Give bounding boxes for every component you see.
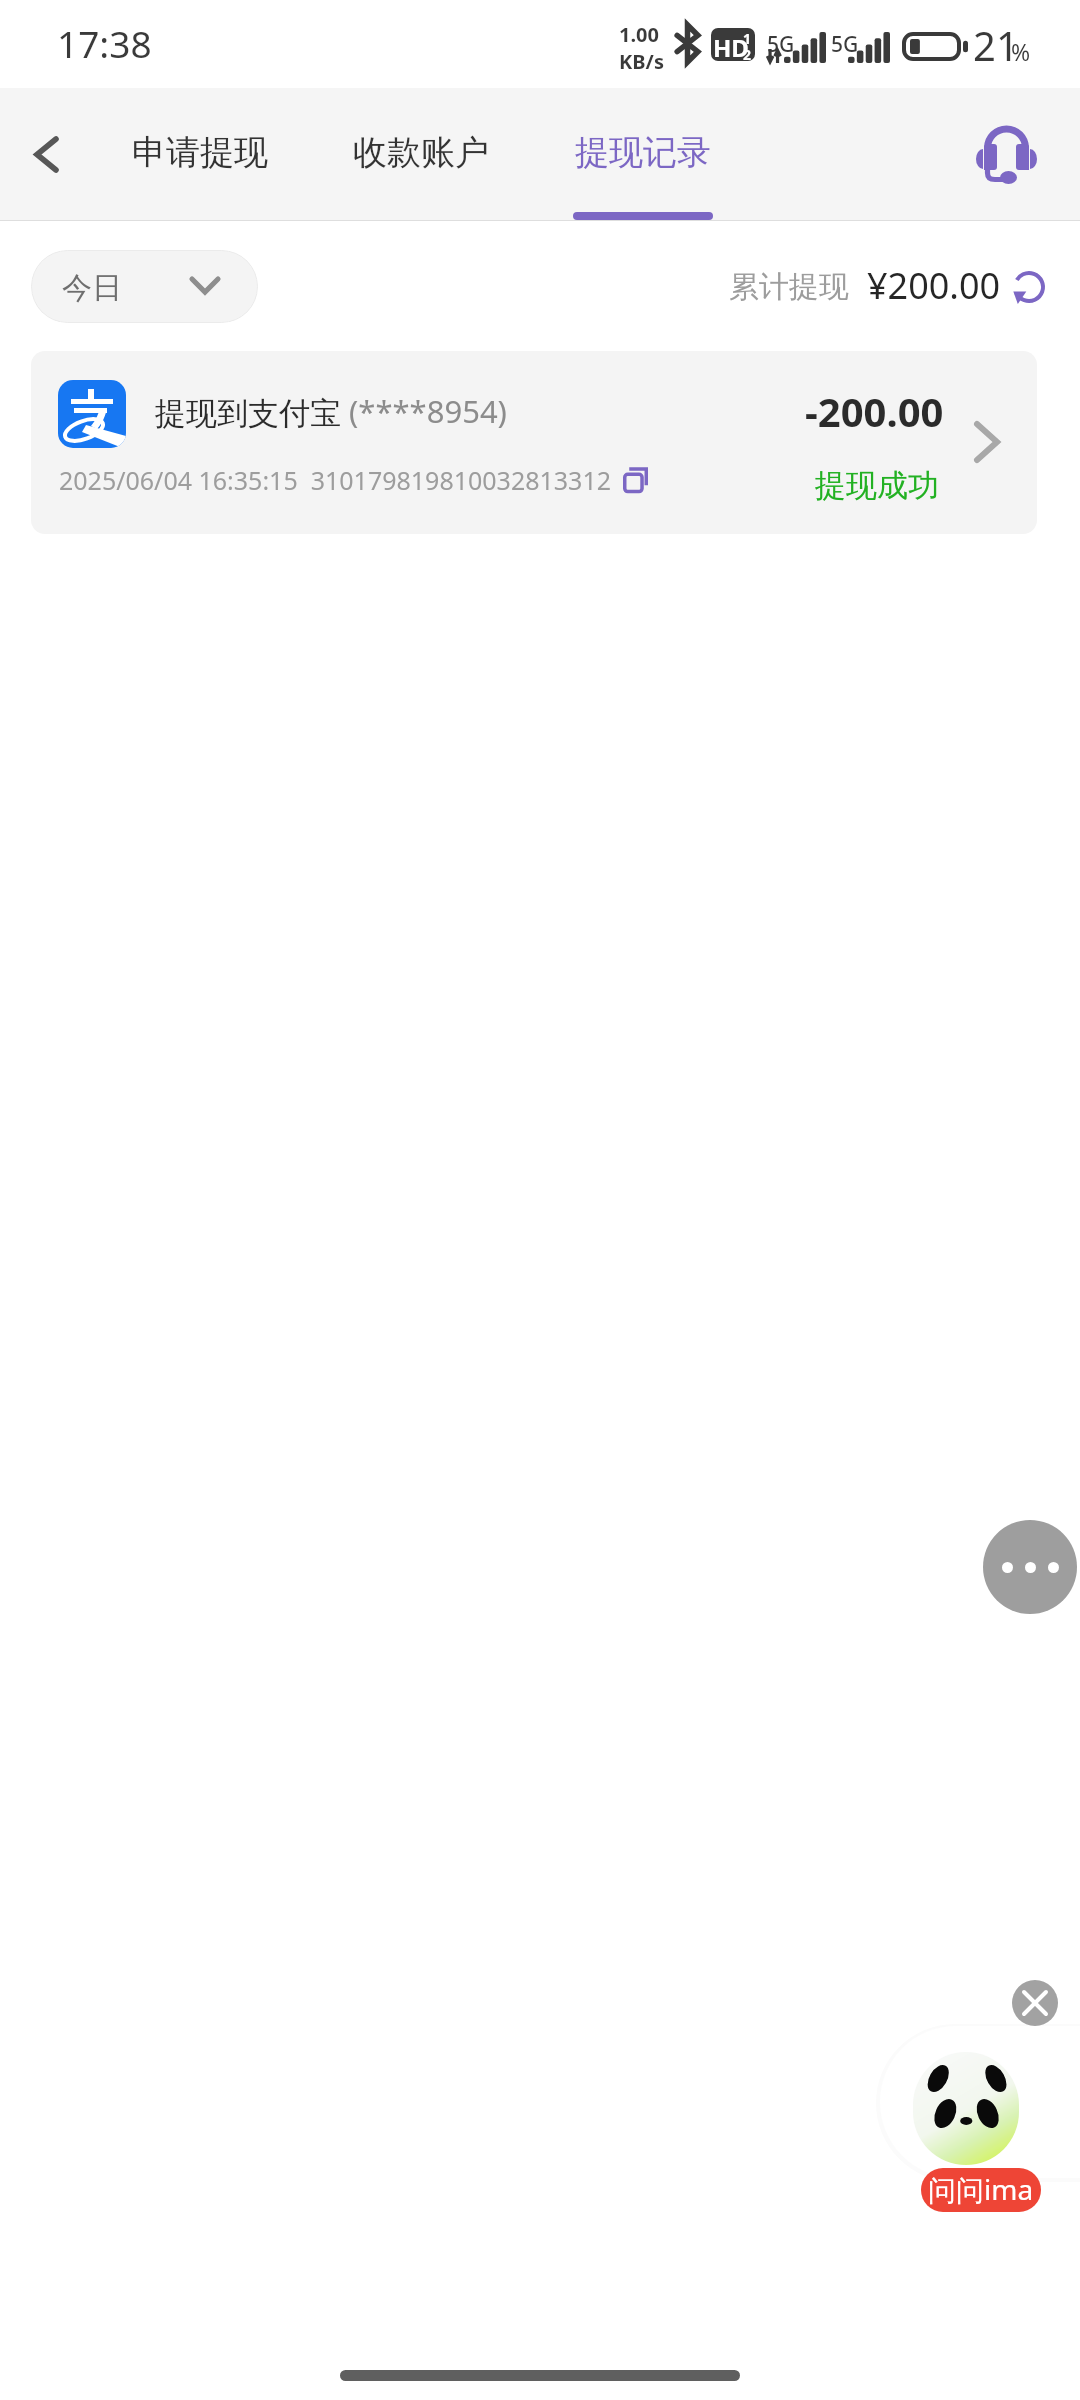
- staticText: 5G: [767, 30, 795, 59]
- staticText: 累计提现: [729, 268, 849, 306]
- staticText: 申请提现: [132, 131, 268, 174]
- staticText: 收款账户: [353, 131, 489, 174]
- staticText: 今日: [62, 269, 122, 307]
- button[interactable]: Copy: [623, 468, 647, 492]
- button[interactable]: 申请提现: [122, 88, 278, 221]
- staticText: 21: [973, 18, 1019, 72]
- staticText: 2025/06/04 16:35:15 31017981981003281331…: [59, 463, 612, 497]
- staticText: %: [1011, 36, 1031, 67]
- button[interactable]: 今日: [31, 250, 258, 323]
- staticText: HD: [713, 31, 749, 61]
- staticText: 问问ima: [928, 2170, 1034, 2208]
- staticText: -200.00: [805, 384, 944, 438]
- button[interactable]: Customer service: [964, 88, 1052, 221]
- staticText: KB/s: [619, 48, 664, 75]
- staticText: (****8954): [341, 390, 507, 432]
- staticText: 1.00: [619, 21, 659, 48]
- button[interactable]: Ask ima: [880, 2026, 1080, 2178]
- button[interactable]: Refresh: [1007, 265, 1051, 309]
- staticText: 17:38: [57, 18, 152, 68]
- staticText: 1: [743, 29, 752, 48]
- button[interactable]: Ask ima: [921, 2168, 1041, 2212]
- button[interactable]: Close: [1012, 1980, 1058, 2026]
- staticText: 提现记录: [575, 131, 711, 174]
- button[interactable]: More options: [983, 1520, 1077, 1614]
- staticText: ¥200.00: [867, 261, 1001, 310]
- staticText: 5G: [831, 30, 859, 59]
- button[interactable]: 提现到支付宝: [31, 351, 1037, 534]
- staticText: 提现成功: [815, 466, 939, 505]
- staticText: 2: [743, 45, 752, 61]
- button[interactable]: Back: [8, 88, 96, 221]
- button[interactable]: 提现记录: [565, 88, 721, 221]
- staticText: 提现到支付宝: [155, 394, 341, 433]
- button[interactable]: 收款账户: [343, 88, 499, 221]
